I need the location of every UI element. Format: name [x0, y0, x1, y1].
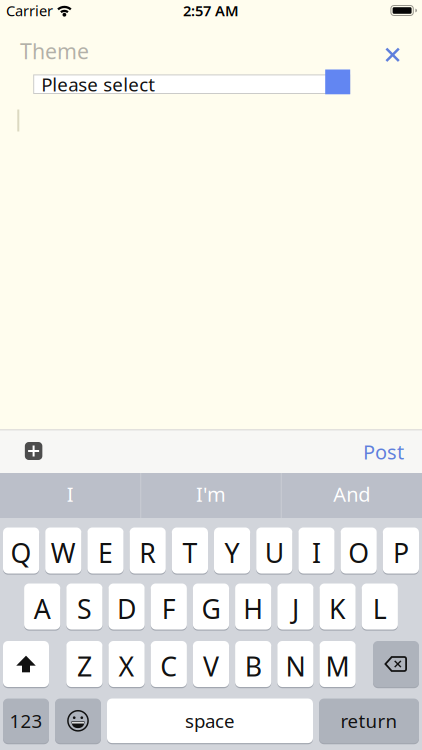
button[interactable]: V: [193, 641, 229, 687]
staticText: Theme: [20, 37, 89, 65]
staticText: F: [162, 591, 176, 626]
button[interactable]: M: [319, 641, 356, 687]
button[interactable]: R: [130, 527, 166, 573]
staticText: J: [292, 591, 299, 626]
staticText: 123: [9, 708, 42, 733]
button[interactable]: W: [45, 527, 81, 573]
staticText: H: [243, 591, 263, 626]
button[interactable]: return: [319, 698, 419, 743]
button[interactable]: space: [107, 698, 313, 743]
button[interactable]: Shift: [3, 641, 49, 687]
staticText: D: [117, 591, 136, 626]
staticText: I: [312, 535, 321, 570]
staticText: Z: [77, 648, 92, 684]
button[interactable]: H: [235, 583, 271, 629]
button[interactable]: B: [235, 641, 271, 687]
staticText: P: [393, 535, 409, 570]
staticText: V: [203, 648, 219, 684]
button[interactable]: Z: [66, 641, 102, 687]
staticText: W: [51, 535, 76, 570]
button[interactable]: G: [193, 583, 229, 629]
staticText: O: [348, 535, 369, 570]
button[interactable]: Delete: [373, 641, 419, 687]
staticText: R: [139, 535, 156, 570]
button[interactable]: O: [341, 527, 377, 573]
staticText: And: [333, 481, 370, 507]
button[interactable]: F: [151, 583, 187, 629]
staticText: I'm: [196, 481, 226, 507]
button[interactable]: I'm: [141, 473, 280, 518]
staticText: B: [245, 648, 262, 684]
staticText: Post: [363, 438, 404, 465]
button[interactable]: N: [277, 641, 313, 687]
staticText: N: [285, 648, 305, 684]
button[interactable]: And: [282, 473, 421, 518]
button[interactable]: E: [87, 527, 124, 573]
staticText: A: [34, 591, 51, 626]
staticText: C: [160, 648, 177, 684]
button[interactable]: Post: [363, 438, 404, 465]
staticText: Q: [11, 535, 32, 570]
button[interactable]: S: [66, 583, 102, 629]
button[interactable]: I: [298, 527, 335, 573]
staticText: S: [77, 591, 92, 626]
staticText: I: [67, 481, 74, 507]
staticText: Carrier: [6, 1, 53, 20]
button[interactable]: D: [108, 583, 145, 629]
staticText: return: [340, 708, 397, 733]
staticText: Please select: [41, 72, 155, 97]
staticText: 2:57 AM: [183, 1, 239, 20]
staticText: T: [182, 535, 197, 570]
button[interactable]: Y: [214, 527, 250, 573]
button[interactable]: T: [172, 527, 208, 573]
staticText: G: [201, 591, 220, 626]
staticText: M: [326, 648, 350, 684]
button[interactable]: A: [24, 583, 60, 629]
button[interactable]: Q: [3, 527, 39, 573]
button[interactable]: X: [108, 641, 145, 687]
staticText: L: [373, 591, 387, 626]
button[interactable]: P: [383, 527, 419, 573]
button[interactable]: Add: [25, 442, 42, 460]
button[interactable]: Emoji: [55, 698, 101, 743]
staticText: U: [265, 535, 284, 570]
button[interactable]: 123: [3, 698, 49, 743]
button[interactable]: L: [362, 583, 398, 629]
button[interactable]: J: [277, 583, 313, 629]
button[interactable]: C: [151, 641, 187, 687]
staticText: space: [185, 708, 235, 733]
staticText: K: [329, 591, 346, 626]
button[interactable]: Please select: [33, 74, 350, 94]
staticText: E: [98, 535, 113, 570]
button[interactable]: K: [319, 583, 356, 629]
button[interactable]: I: [1, 473, 140, 518]
button[interactable]: Close: [380, 42, 406, 68]
staticText: X: [119, 648, 135, 684]
staticText: Y: [225, 535, 240, 570]
button[interactable]: U: [256, 527, 292, 573]
